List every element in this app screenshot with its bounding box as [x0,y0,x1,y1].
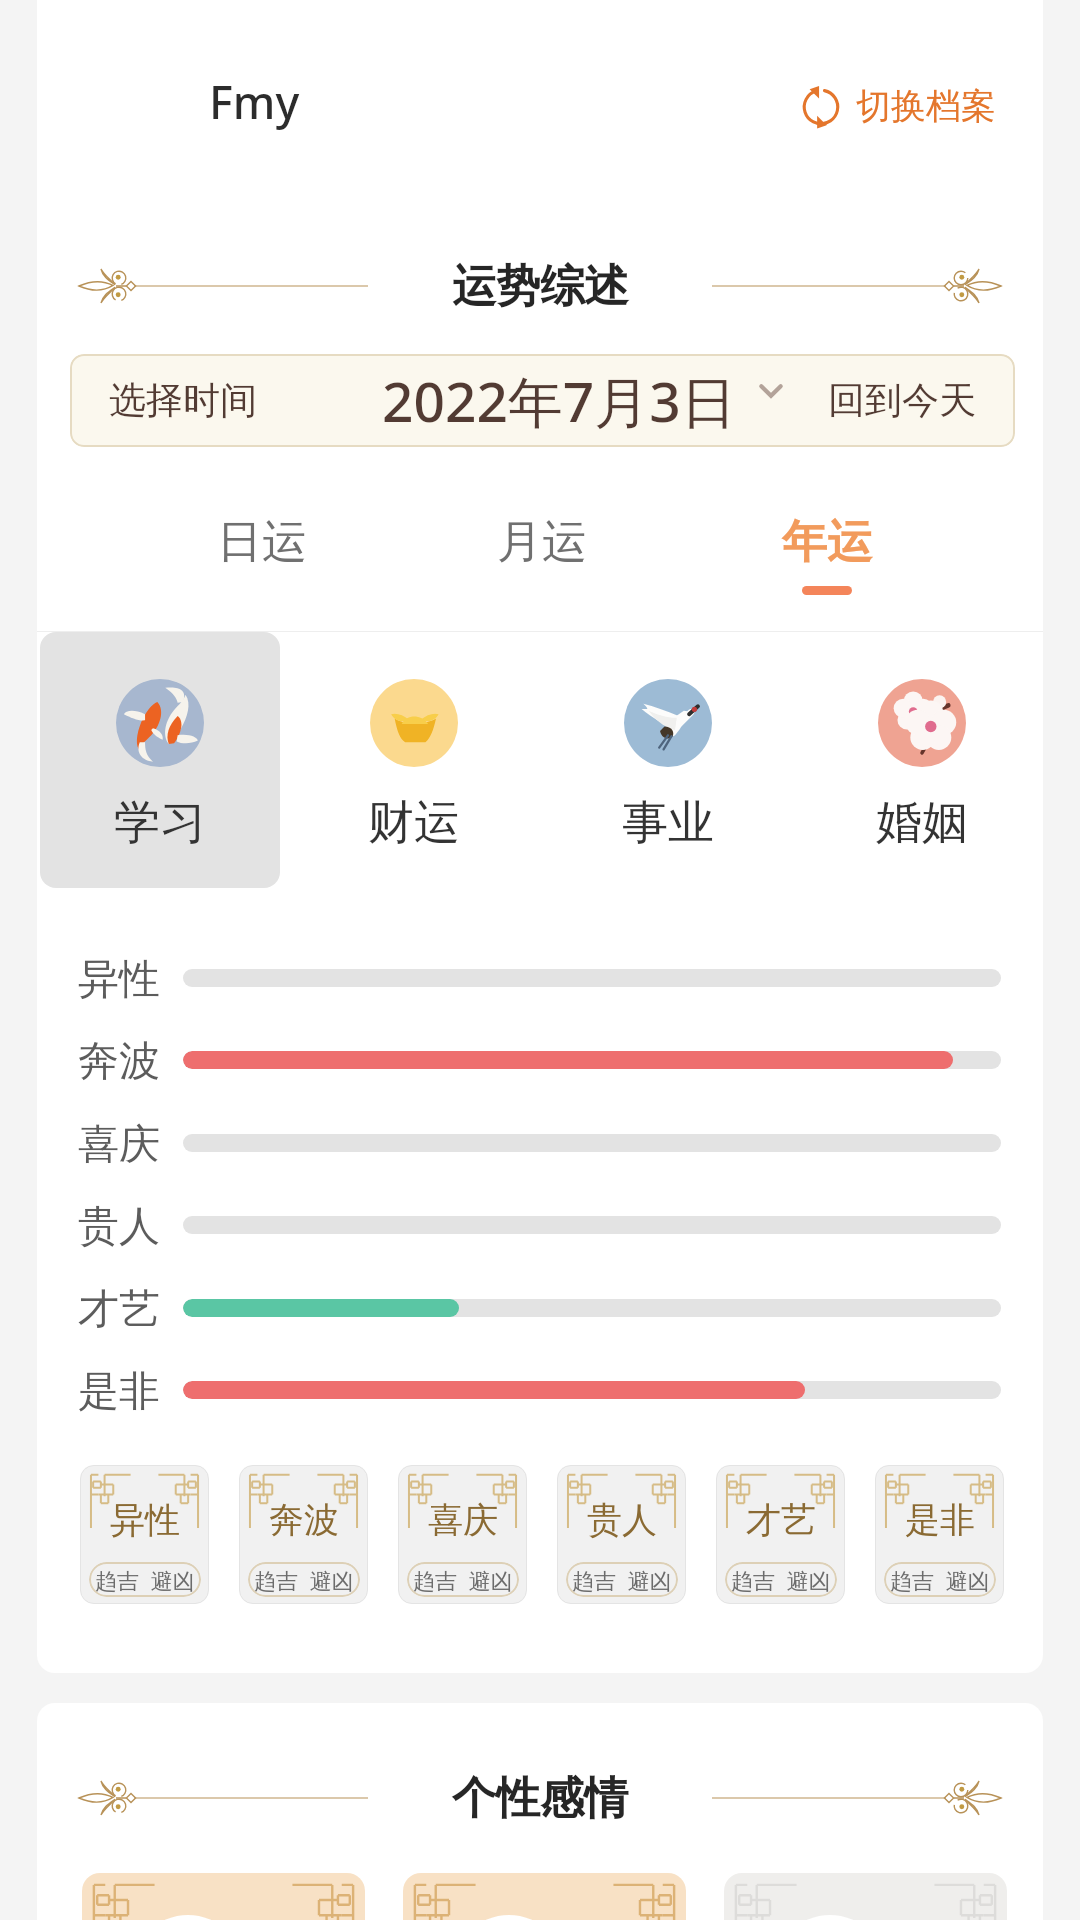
button[interactable]: 2022年7月3日 [382,354,782,447]
button[interactable]: 日运 [167,482,357,632]
staticText: 趋吉 避凶 [95,1565,195,1595]
staticText: 运势综述 [452,259,628,314]
staticText: 回到今天 [828,377,976,424]
staticText: 2022年7月3日 [382,363,736,438]
staticText: 奔波 [269,1498,339,1542]
button[interactable]: 财运 [294,632,534,888]
staticText: 年运 [782,514,872,571]
staticText: 趋吉 避凶 [572,1565,672,1595]
button[interactable]: 贵人 [557,1465,686,1604]
staticText: 切换档案 [856,84,996,128]
staticText: 才艺 [78,1284,160,1336]
button[interactable]: 才艺 [716,1465,845,1604]
staticText: 异性 [78,954,160,1006]
button[interactable]: 婚姻 [802,632,1042,888]
staticText: 趋吉 避凶 [413,1565,513,1595]
staticText: 个性感情 [452,1771,628,1826]
button[interactable]: 喜庆 [398,1465,527,1604]
button[interactable]: 选择时间 [74,354,292,447]
staticText: 趋吉 避凶 [731,1565,831,1595]
staticText: 月运 [497,514,587,571]
staticText: 才艺 [746,1498,816,1542]
button[interactable]: 事业 [548,632,788,888]
staticText: 贵人 [78,1201,160,1253]
other: 切换档案 [796,81,846,131]
staticText: 学习 [114,794,206,852]
staticText: 事业 [622,794,714,852]
staticText: 趋吉 避凶 [254,1565,354,1595]
staticText: 奔波 [78,1036,160,1088]
staticText: 日运 [217,514,307,571]
staticText: 财运 [368,794,460,852]
staticText: 选择时间 [109,377,257,424]
button[interactable]: 回到今天 [788,354,1015,447]
button[interactable]: 异性 [80,1465,209,1604]
button[interactable]: 学习 [40,632,280,888]
button[interactable]: 月运 [447,482,637,632]
button[interactable] [403,1873,686,1920]
button[interactable] [724,1873,1007,1920]
staticText: 是非 [905,1498,975,1542]
staticText: Fmy [209,71,300,132]
staticText: 喜庆 [428,1498,498,1542]
button[interactable] [82,1873,365,1920]
staticText: 贵人 [587,1498,657,1542]
button[interactable]: 切换档案 [789,70,1003,142]
button[interactable]: 奔波 [239,1465,368,1604]
button[interactable]: 是非 [875,1465,1004,1604]
staticText: 是非 [78,1366,160,1418]
staticText: 婚姻 [876,794,968,852]
staticText: 异性 [110,1498,180,1542]
staticText: 趋吉 避凶 [890,1565,990,1595]
staticText: 喜庆 [78,1119,160,1171]
button[interactable]: 年运 [732,482,922,632]
